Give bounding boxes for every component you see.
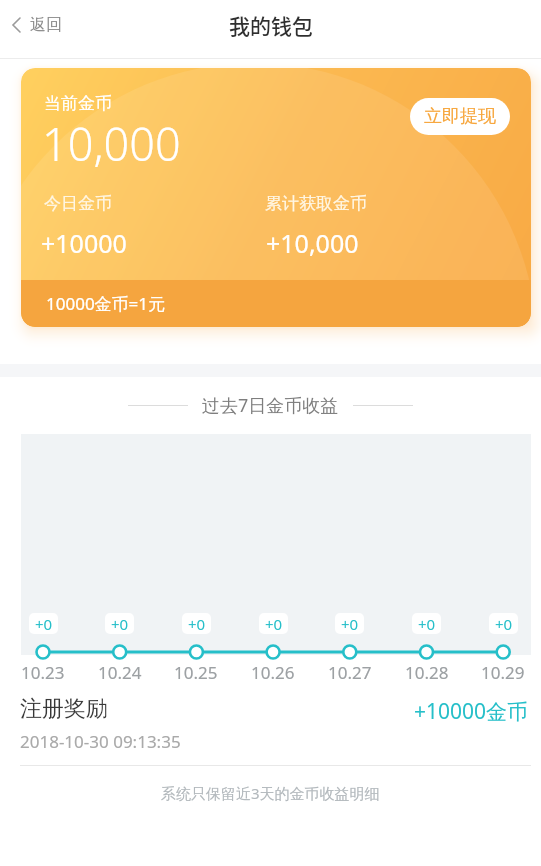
staticText: +0 xyxy=(341,614,359,634)
button[interactable]: 返回 xyxy=(0,0,62,54)
staticText: 10.23 xyxy=(21,661,65,684)
staticText: 我的钱包 xyxy=(229,10,313,40)
staticText: 注册奖励 xyxy=(20,695,108,723)
staticText: 系统只保留近3天的金币收益明细 xyxy=(161,783,380,803)
staticText: +0 xyxy=(111,614,129,634)
staticText: 立即提现 xyxy=(424,105,496,128)
staticText: +0 xyxy=(418,614,436,634)
staticText: +0 xyxy=(495,614,513,634)
staticText: 过去7日金币收益 xyxy=(202,393,339,417)
staticText: +10,000 xyxy=(266,226,359,260)
staticText: 累计获取金币 xyxy=(265,193,367,214)
staticText: 10.26 xyxy=(251,661,295,684)
staticText: +10000金币 xyxy=(414,697,529,726)
staticText: 返回 xyxy=(30,15,62,35)
staticText: +10000 xyxy=(41,226,127,260)
staticText: +0 xyxy=(35,614,53,634)
staticText: 2018-10-30 09:13:35 xyxy=(20,730,181,753)
staticText: 10.25 xyxy=(174,661,218,684)
staticText: 10.27 xyxy=(328,661,372,684)
staticText: 今日金币 xyxy=(44,193,112,214)
staticText: 10.29 xyxy=(481,661,525,684)
staticText: 10000金币=1元 xyxy=(46,292,166,315)
staticText: 10.28 xyxy=(405,661,449,684)
staticText: 当前金币 xyxy=(44,93,112,114)
button[interactable]: 立即提现 xyxy=(410,98,510,135)
staticText: 10.24 xyxy=(98,661,142,684)
button[interactable]: 注册奖励 xyxy=(0,692,541,765)
staticText: 10,000 xyxy=(42,113,181,174)
staticText: +0 xyxy=(265,614,283,634)
staticText: +0 xyxy=(188,614,206,634)
